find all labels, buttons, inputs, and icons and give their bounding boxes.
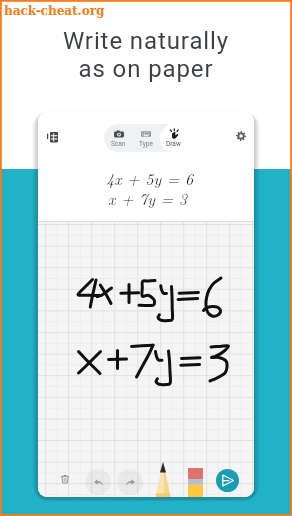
staticText: hack-cheat.org xyxy=(4,4,105,18)
staticText: Write naturally xyxy=(0,27,292,55)
staticText: Draw xyxy=(166,140,181,148)
button[interactable]: Undo xyxy=(85,469,111,495)
button[interactable]: Sheets xyxy=(43,128,61,146)
button[interactable]: Draw xyxy=(160,124,187,152)
button[interactable]: Eraser xyxy=(188,468,203,497)
staticText: x + 7y = 3 xyxy=(108,187,188,210)
staticText: Type xyxy=(139,140,153,148)
button[interactable]: Send xyxy=(216,469,239,492)
staticText: as on paper xyxy=(0,55,292,83)
button[interactable]: Redo xyxy=(117,469,143,495)
button[interactable]: Scan xyxy=(104,124,132,152)
button[interactable]: Pen xyxy=(155,462,171,497)
staticText: Scan xyxy=(111,140,126,148)
button[interactable]: Delete xyxy=(60,474,70,487)
button[interactable]: Settings xyxy=(232,127,250,145)
button[interactable]: Type xyxy=(132,124,160,152)
staticText: 4x + 5y = 6 xyxy=(106,167,194,190)
